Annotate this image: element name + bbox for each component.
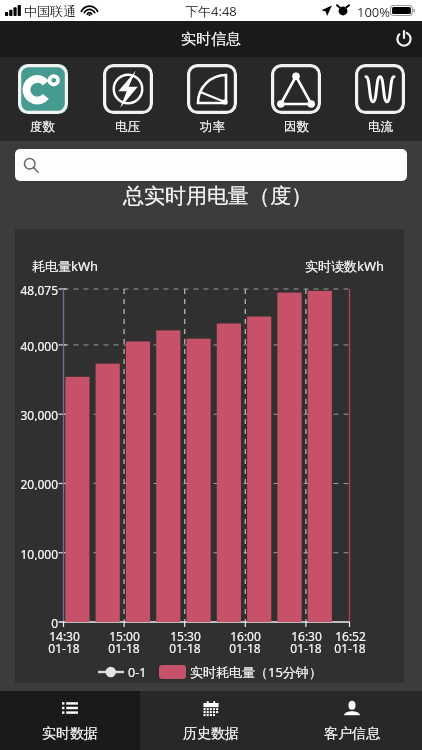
staticText: 实时信息 <box>181 30 241 49</box>
staticText: 01-18 <box>48 640 80 656</box>
staticText: 100% <box>357 3 391 21</box>
staticText: 实时数据 <box>42 725 98 743</box>
staticText: 中国联通 <box>24 3 76 19</box>
staticText: 10,000 <box>20 546 58 560</box>
staticText: 15:00 <box>109 628 140 644</box>
staticText: 16:52 <box>335 628 366 644</box>
staticText: 14:30 <box>49 628 80 644</box>
staticText: 20,000 <box>20 476 58 490</box>
staticText: 01-18 <box>108 640 140 656</box>
button[interactable] <box>15 149 407 181</box>
staticText: 历史数据 <box>183 725 239 743</box>
button[interactable]: 功率 <box>170 57 254 141</box>
staticText: 0 <box>51 615 58 629</box>
button[interactable]: Power <box>386 21 422 57</box>
staticText: 01-18 <box>169 640 201 656</box>
staticText: 30,000 <box>20 407 58 421</box>
staticText: 下午4:48 <box>185 2 237 20</box>
staticText: 40,000 <box>20 338 58 352</box>
staticText: 01-18 <box>290 640 322 656</box>
button[interactable]: 历史数据 <box>140 691 281 750</box>
staticText: 客户信息 <box>324 725 380 743</box>
staticText: 因数 <box>284 119 309 135</box>
button[interactable]: 实时数据 <box>0 691 140 750</box>
staticText: 16:30 <box>291 628 322 644</box>
staticText: 功率 <box>200 119 225 135</box>
button[interactable]: 因数 <box>254 57 338 141</box>
staticText: 01-18 <box>229 640 261 656</box>
staticText: 耗电量kWh <box>32 257 99 275</box>
staticText: 电压 <box>115 119 140 135</box>
staticText: 实时读数kWh <box>305 257 385 275</box>
staticText: 01-18 <box>334 640 366 656</box>
staticText: 电流 <box>368 119 393 135</box>
staticText: 总实时用电量（度） <box>123 183 312 209</box>
staticText: 度数 <box>30 119 55 135</box>
button[interactable]: 电流 <box>338 57 422 141</box>
button[interactable]: 度数 <box>0 57 85 141</box>
button[interactable]: 电压 <box>85 57 170 141</box>
staticText: 48,075 <box>20 282 58 296</box>
staticText: 15:30 <box>170 628 201 644</box>
staticText: 16:00 <box>230 628 261 644</box>
button[interactable]: 客户信息 <box>281 691 422 750</box>
staticText: 实时耗电量（15分钟） <box>190 663 322 681</box>
staticText: 0-1 <box>128 664 147 681</box>
